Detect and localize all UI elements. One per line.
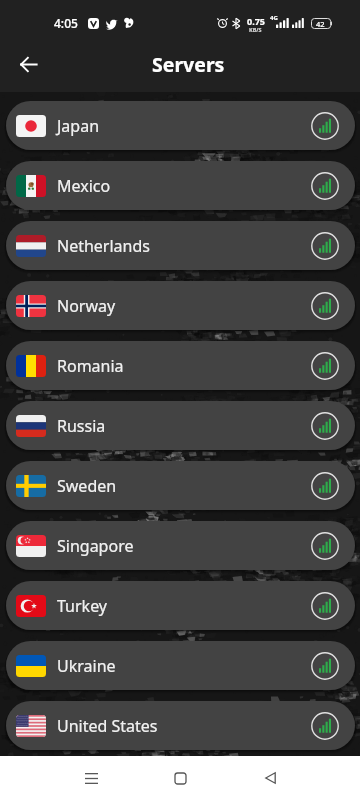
staticText: Servers [152, 51, 225, 78]
button[interactable]: Sweden [6, 461, 355, 510]
button[interactable]: Home [156, 756, 204, 800]
staticText: Japan [57, 115, 100, 137]
button[interactable]: Norway [6, 281, 355, 330]
button[interactable]: Russia [6, 401, 355, 450]
staticText: Ukraine [57, 655, 116, 677]
staticText: Sweden [57, 475, 117, 497]
button[interactable]: Ukraine [6, 641, 355, 690]
button[interactable]: Singapore [6, 521, 355, 570]
staticText: 4G [270, 14, 278, 22]
button[interactable]: Back [246, 756, 294, 800]
button[interactable]: Back [10, 46, 46, 82]
staticText: 42 [316, 19, 325, 29]
staticText: 4:05 [54, 15, 78, 31]
button[interactable]: Mexico [6, 161, 355, 210]
staticText: Mexico [57, 175, 111, 197]
button[interactable]: Turkey [6, 581, 355, 630]
staticText: KB/S [249, 26, 262, 33]
staticText: Russia [57, 415, 106, 437]
staticText: Norway [57, 295, 116, 317]
staticText: Netherlands [57, 235, 150, 257]
button[interactable]: Netherlands [6, 221, 355, 270]
staticText: Turkey [57, 595, 108, 617]
staticText: United States [57, 715, 158, 737]
staticText: Romania [57, 355, 124, 377]
button[interactable]: United States [6, 701, 355, 750]
button[interactable]: Romania [6, 341, 355, 390]
staticText: Singapore [57, 535, 134, 557]
staticText: 0.75 [247, 15, 265, 27]
button[interactable]: Japan [6, 101, 355, 150]
button[interactable]: Recent apps [67, 756, 115, 800]
